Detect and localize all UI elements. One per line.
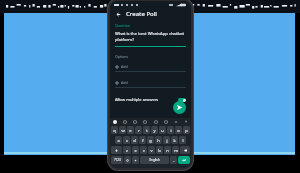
button[interactable]: w — [119, 126, 126, 134]
button[interactable]: o — [175, 126, 182, 134]
button[interactable]: r — [135, 126, 142, 134]
staticText: r — [138, 128, 140, 133]
button[interactable] — [164, 120, 168, 124]
button[interactable]: k — [171, 136, 178, 144]
button[interactable]: s — [123, 136, 130, 144]
staticText: p — [185, 128, 188, 133]
button[interactable]: Send poll — [173, 101, 186, 114]
button[interactable]: t — [143, 126, 150, 134]
button[interactable]: . — [170, 156, 177, 164]
staticText: i — [170, 128, 172, 133]
staticText: q — [113, 128, 116, 133]
staticText: y — [153, 128, 156, 133]
button[interactable] — [184, 120, 188, 124]
button[interactable]: d — [131, 136, 138, 144]
button[interactable]: Add — [115, 80, 186, 88]
button[interactable] — [154, 120, 158, 124]
staticText: . — [173, 158, 175, 163]
button[interactable]: v — [148, 146, 155, 154]
button[interactable]: q — [111, 126, 118, 134]
button[interactable] — [143, 120, 147, 124]
button[interactable]: Settings — [132, 156, 139, 164]
staticText: Create Poll — [126, 10, 157, 18]
button[interactable]: a — [115, 136, 122, 144]
button[interactable]: Backspace — [180, 146, 190, 154]
button[interactable]: i — [167, 126, 174, 134]
staticText: z — [126, 148, 128, 153]
staticText: l — [182, 138, 184, 143]
staticText: Add — [121, 64, 128, 69]
staticText: k — [173, 138, 176, 143]
button[interactable]: g — [147, 136, 154, 144]
staticText: b — [158, 148, 161, 153]
button[interactable] — [133, 120, 137, 124]
staticText: Add — [121, 80, 128, 85]
staticText: u — [161, 128, 164, 133]
staticText: t — [146, 128, 148, 133]
staticText: f — [142, 138, 144, 143]
staticText: h — [157, 138, 160, 143]
button[interactable]: Shift — [111, 146, 122, 154]
staticText: g — [149, 138, 152, 143]
staticText: x — [134, 148, 137, 153]
button[interactable]: y — [151, 126, 158, 134]
staticText: o — [177, 128, 180, 133]
staticText: j — [166, 138, 168, 143]
staticText: d — [133, 138, 136, 143]
button[interactable]: u — [159, 126, 166, 134]
button[interactable] — [174, 120, 178, 124]
button[interactable]: English — [140, 156, 169, 164]
button[interactable]: b — [156, 146, 163, 154]
button[interactable]: Back — [114, 10, 122, 18]
staticText: s — [126, 138, 128, 143]
button[interactable]: j — [163, 136, 170, 144]
staticText: a — [117, 138, 120, 143]
staticText: n — [166, 148, 169, 153]
button[interactable]: Enter — [178, 156, 190, 164]
button[interactable]: c — [140, 146, 147, 154]
button[interactable]: x — [132, 146, 139, 154]
staticText: w — [121, 128, 125, 133]
staticText: c — [143, 148, 145, 153]
staticText: What is the best WhatsApp chatbot platfo… — [115, 31, 186, 43]
staticText: Question — [115, 23, 130, 28]
button[interactable]: l — [179, 136, 186, 144]
staticText: ?123 — [114, 158, 121, 162]
button[interactable]: Add — [115, 64, 186, 72]
button[interactable]: Allow multiple answers — [115, 97, 186, 102]
button[interactable]: m — [172, 146, 179, 154]
button[interactable] — [113, 120, 117, 124]
staticText: e — [129, 128, 132, 133]
staticText: Options — [115, 54, 129, 59]
button[interactable]: f — [139, 136, 146, 144]
button[interactable]: p — [183, 126, 190, 134]
button[interactable]: Emoji — [124, 156, 131, 164]
staticText: m — [174, 148, 178, 153]
button[interactable]: e — [127, 126, 134, 134]
button[interactable]: h — [155, 136, 162, 144]
button[interactable]: n — [164, 146, 171, 154]
button[interactable] — [123, 120, 127, 124]
staticText: English — [149, 158, 160, 162]
button[interactable]: z — [123, 146, 131, 154]
staticText: v — [150, 148, 153, 153]
staticText: Allow multiple answers — [115, 97, 159, 102]
button[interactable]: ?123 — [111, 156, 123, 164]
